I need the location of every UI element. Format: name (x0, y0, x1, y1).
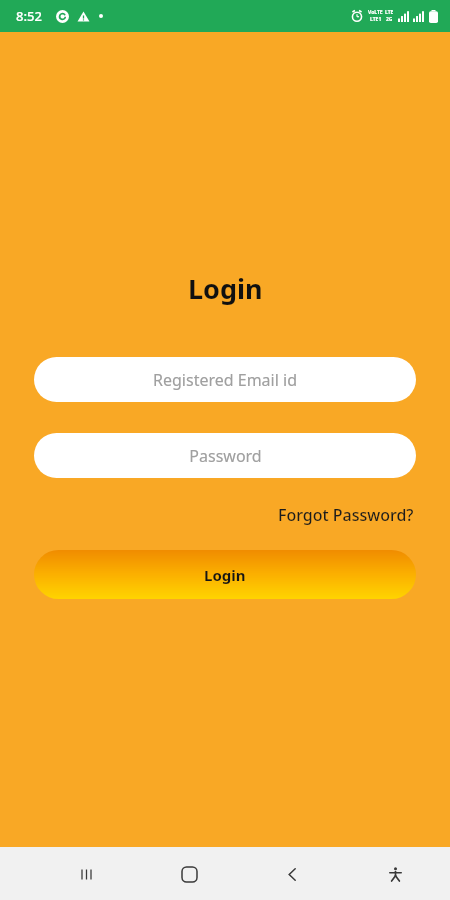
button[interactable]: Forgot Password? (276, 502, 416, 528)
staticText: LTE1 (370, 16, 382, 23)
staticText: VoLTE (368, 9, 383, 16)
staticText: 2G (386, 16, 393, 23)
button[interactable]: Password (34, 433, 416, 478)
staticText: LTE (385, 9, 394, 16)
button[interactable]: Recents (62, 850, 110, 898)
staticText: Forgot Password? (278, 504, 414, 526)
staticText: Login (188, 270, 263, 307)
button[interactable]: Login (34, 550, 416, 599)
button[interactable]: Home (165, 850, 213, 898)
staticText: Login (204, 565, 246, 585)
staticText: Password (189, 445, 262, 467)
button[interactable]: Back (268, 850, 316, 898)
button[interactable]: Registered Email id (34, 357, 416, 402)
button[interactable]: Accessibility (371, 850, 419, 898)
staticText: Registered Email id (153, 369, 297, 391)
staticText: 8:52 (16, 7, 42, 25)
